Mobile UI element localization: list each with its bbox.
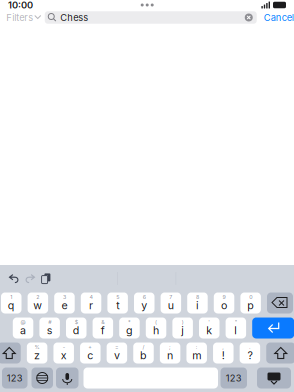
button[interactable]: (: [146, 317, 166, 338]
staticText: 1: [10, 294, 12, 300]
staticText: @: [21, 319, 26, 325]
staticText: 3: [63, 294, 66, 300]
staticText: %: [35, 344, 40, 350]
staticText: -: [63, 344, 65, 350]
staticText: 8: [196, 294, 199, 300]
button[interactable]: =: [107, 342, 127, 363]
button[interactable]: 3: [54, 292, 75, 313]
button[interactable]: Shift: [0, 342, 21, 363]
button[interactable]: Redo: [22, 268, 38, 288]
button[interactable]: 123: [2, 367, 27, 388]
button[interactable]: 4: [81, 292, 101, 313]
staticText: ": [235, 319, 237, 325]
staticText: z: [34, 349, 40, 362]
staticText: 5: [116, 294, 119, 300]
staticText: f: [101, 324, 105, 337]
button[interactable]: ': [199, 317, 219, 338]
staticText: *: [128, 319, 131, 325]
button[interactable]: Dictate: [56, 367, 78, 388]
button[interactable]: Undo: [6, 268, 22, 288]
button[interactable]: 123: [220, 367, 247, 388]
staticText: s: [47, 324, 53, 337]
staticText: l: [234, 324, 237, 337]
staticText: q: [8, 299, 15, 312]
button[interactable]: +: [80, 342, 101, 363]
button[interactable]: Filters: [0, 9, 45, 25]
staticText: a: [20, 324, 26, 337]
staticText: #: [48, 319, 51, 325]
button[interactable]: Paste: [38, 268, 54, 288]
button[interactable]: 8: [187, 292, 208, 313]
staticText: Chess: [60, 12, 88, 23]
staticText: w: [33, 299, 42, 312]
staticText: u: [168, 299, 174, 312]
staticText: ': [208, 319, 210, 325]
button[interactable]: ): [172, 317, 193, 338]
staticText: x: [61, 349, 67, 362]
staticText: 10:00: [8, 0, 33, 10]
staticText: 2: [36, 294, 39, 300]
button[interactable]: $: [66, 317, 86, 338]
staticText: ;: [169, 344, 171, 350]
button[interactable]: 5: [107, 292, 128, 313]
staticText: 6: [143, 294, 146, 300]
button[interactable]: 2: [28, 292, 48, 313]
staticText: 4: [90, 294, 93, 300]
button[interactable]: Dismiss keyboard: [257, 367, 291, 388]
button[interactable]: 1: [1, 292, 21, 313]
staticText: 123: [7, 372, 23, 383]
button[interactable]: *: [119, 317, 140, 338]
button[interactable]: Next keyboard: [31, 367, 53, 388]
staticText: 0: [249, 294, 252, 300]
button[interactable]: 6: [134, 292, 154, 313]
button[interactable]: 9: [214, 292, 234, 313]
button[interactable]: 0: [240, 292, 261, 313]
staticText: !: [222, 349, 225, 362]
staticText: y: [141, 299, 147, 312]
button[interactable]: :: [186, 342, 207, 363]
staticText: m: [192, 349, 201, 362]
staticText: =: [115, 344, 119, 350]
staticText: 7: [169, 294, 172, 300]
staticText: /: [142, 344, 144, 350]
button[interactable]: &: [93, 317, 113, 338]
staticText: v: [114, 349, 120, 362]
button[interactable]: #: [39, 317, 60, 338]
staticText: e: [61, 299, 67, 312]
button[interactable]: Cancel: [257, 9, 294, 25]
staticText: d: [73, 324, 80, 337]
staticText: o: [221, 299, 227, 312]
staticText: k: [206, 324, 212, 337]
staticText: &: [101, 319, 104, 325]
button[interactable]: Return: [252, 317, 294, 338]
staticText: i: [196, 299, 199, 312]
staticText: 123: [226, 372, 242, 383]
button[interactable]: /: [133, 342, 154, 363]
button[interactable]: .: [240, 342, 260, 363]
staticText: n: [167, 349, 173, 362]
button[interactable]: -: [53, 342, 74, 363]
staticText: t: [116, 299, 119, 312]
staticText: r: [89, 299, 93, 312]
button[interactable]: ": [226, 317, 246, 338]
staticText: c: [87, 349, 93, 362]
button[interactable]: %: [27, 342, 47, 363]
button[interactable]: ,: [213, 342, 233, 363]
staticText: 9: [222, 294, 225, 300]
staticText: Cancel: [264, 12, 294, 23]
staticText: ): [182, 319, 184, 325]
staticText: $: [75, 319, 78, 325]
staticText: j: [181, 324, 184, 337]
button[interactable]: 7: [161, 292, 181, 313]
button[interactable]: ;: [160, 342, 180, 363]
staticText: p: [247, 299, 254, 312]
staticText: +: [88, 344, 92, 350]
staticText: h: [153, 324, 159, 337]
staticText: b: [140, 349, 147, 362]
button[interactable]: Delete: [267, 292, 293, 313]
button[interactable]: Shift: [266, 342, 294, 363]
button[interactable]: @: [13, 317, 33, 338]
button[interactable]: Clear text: [245, 13, 257, 21]
staticText: Filters: [6, 12, 33, 23]
